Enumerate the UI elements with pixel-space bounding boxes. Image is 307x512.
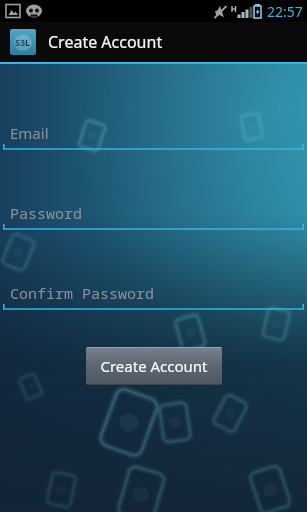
staticText: Create Account xyxy=(100,356,208,376)
other: Silent xyxy=(213,5,228,19)
staticText: Email xyxy=(10,123,49,143)
staticText: 22:57 xyxy=(267,2,303,21)
staticText: Confirm Password xyxy=(10,283,155,303)
button[interactable]: Password xyxy=(3,200,304,233)
button[interactable]: Create Account xyxy=(86,347,222,385)
staticText: Create Account xyxy=(48,31,163,53)
other: Battery xyxy=(252,4,263,19)
staticText: Password xyxy=(10,203,83,223)
button[interactable]: Email xyxy=(3,120,304,153)
staticText: S3L xyxy=(15,36,31,48)
button[interactable]: Confirm Password xyxy=(3,280,304,313)
